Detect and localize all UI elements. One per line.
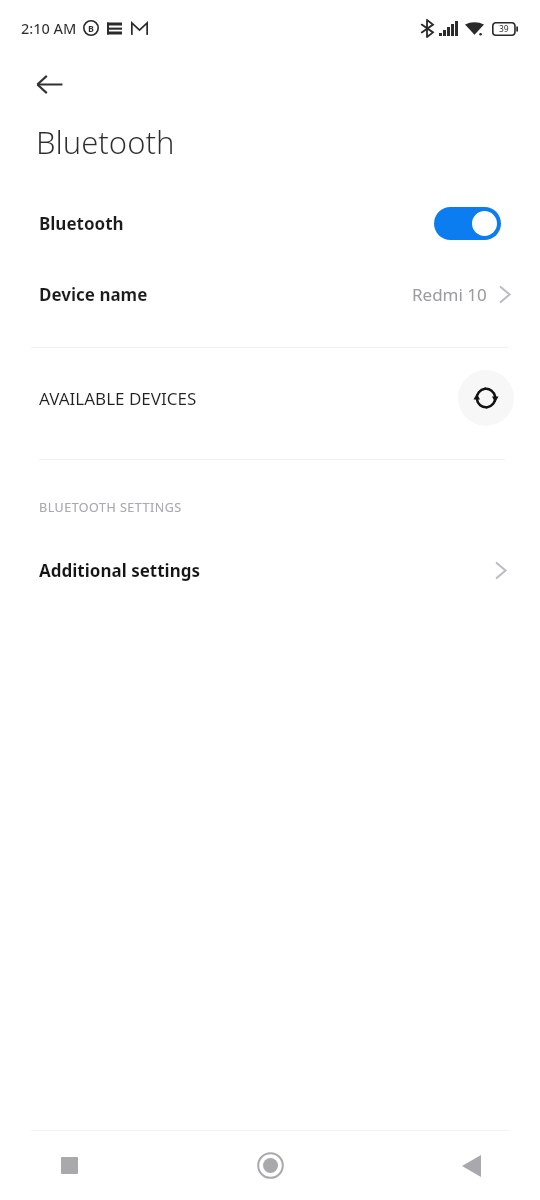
staticText: Additional settings <box>39 559 200 582</box>
button[interactable]: Back <box>360 1131 540 1200</box>
button[interactable]: Home <box>180 1131 360 1200</box>
staticText: Redmi 10 <box>412 283 487 306</box>
button[interactable]: Device name <box>0 254 540 334</box>
button[interactable]: Additional settings <box>0 543 540 597</box>
staticText: Bluetooth <box>39 212 124 235</box>
staticText: AVAILABLE DEVICES <box>39 387 197 410</box>
button[interactable]: Recent apps <box>0 1131 180 1200</box>
button[interactable]: Back <box>21 56 77 112</box>
staticText: Bluetooth <box>36 121 175 163</box>
button[interactable]: Bluetooth <box>0 192 540 254</box>
staticText: B <box>88 22 94 34</box>
staticText: BLUETOOTH SETTINGS <box>39 499 182 516</box>
button[interactable]: Bluetooth on <box>434 207 501 240</box>
button[interactable]: Refresh <box>458 370 514 426</box>
staticText: Device name <box>39 283 148 306</box>
staticText: 2:10 AM <box>21 18 77 38</box>
staticText: 39 <box>499 23 509 35</box>
